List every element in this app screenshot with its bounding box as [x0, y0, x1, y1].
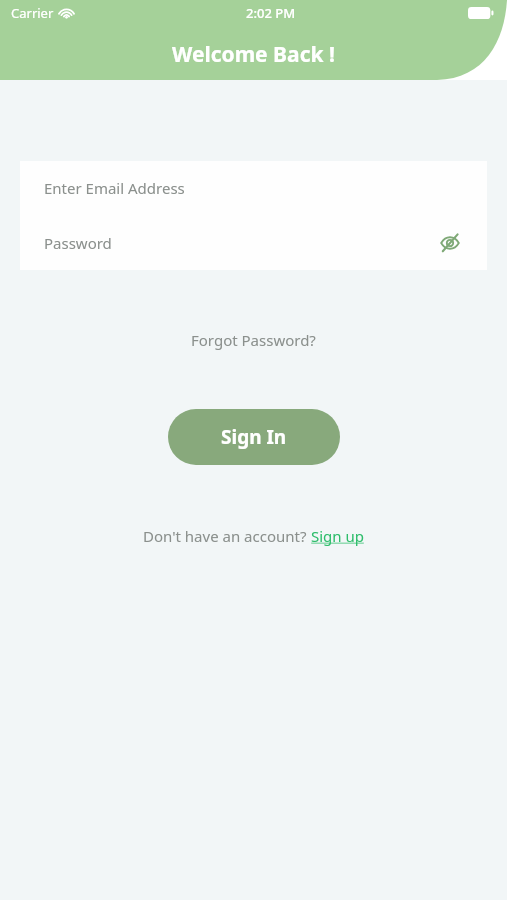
button[interactable]: Enter Email Address — [20, 161, 487, 215]
staticText: Sign up — [311, 526, 364, 546]
button[interactable]: Password — [20, 215, 487, 270]
staticText: 2:02 PM — [246, 4, 296, 22]
button[interactable]: Show password — [437, 230, 463, 256]
staticText: Welcome Back ! — [172, 40, 335, 69]
staticText: Don't have an account? — [143, 526, 311, 546]
staticText: Carrier — [11, 4, 54, 22]
button[interactable]: Forgot Password? — [183, 327, 324, 353]
button[interactable]: Sign In — [168, 409, 340, 465]
staticText: Forgot Password? — [191, 330, 316, 350]
staticText: Password — [44, 233, 112, 253]
staticText: Sign In — [221, 424, 287, 450]
button[interactable]: Sign up — [311, 526, 364, 546]
staticText: Enter Email Address — [44, 178, 185, 198]
